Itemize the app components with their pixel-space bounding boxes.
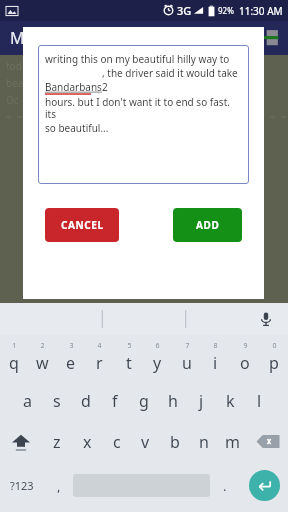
staticText: 11:30 AM — [239, 4, 283, 18]
button[interactable]: f — [100, 380, 129, 421]
staticText: M — [10, 27, 25, 49]
staticText: n — [199, 431, 209, 453]
button[interactable]: CANCEL — [45, 208, 119, 242]
staticText: 4 — [97, 341, 102, 351]
staticText: hours. but I don't want it to end so fas… — [45, 95, 243, 121]
button[interactable]: Voice input — [256, 309, 276, 329]
staticText: t — [126, 352, 132, 374]
staticText: b — [170, 431, 180, 453]
staticText: g — [139, 390, 149, 412]
staticText: s — [53, 390, 61, 412]
button[interactable]: Enter — [240, 462, 288, 509]
staticText: v — [141, 431, 150, 453]
staticText: 5 — [127, 341, 132, 351]
button[interactable]: v — [131, 421, 160, 462]
staticText: 3 — [69, 341, 74, 351]
button[interactable]: n — [189, 421, 218, 462]
staticText: i — [213, 352, 218, 374]
button[interactable]: x — [72, 421, 102, 462]
staticText: Oc — [6, 93, 19, 107]
staticText: writing this on my beautiful hilly way t… — [45, 52, 230, 66]
button[interactable]: Shift — [0, 421, 42, 462]
button[interactable]: 1 — [0, 335, 28, 380]
staticText: c — [113, 431, 121, 453]
button[interactable]: . — [210, 462, 240, 509]
staticText: . — [223, 477, 227, 495]
staticText: 9 — [243, 341, 248, 351]
staticText: o — [240, 352, 250, 374]
button[interactable]: m — [218, 421, 247, 462]
staticText: k — [226, 390, 235, 412]
staticText: , — [57, 477, 61, 495]
button[interactable]: d — [71, 380, 100, 421]
button[interactable]: s — [42, 380, 71, 421]
staticText: p — [269, 352, 279, 374]
staticText: w — [36, 352, 49, 374]
staticText: 3G — [177, 3, 192, 18]
staticText: j — [199, 390, 204, 412]
staticText: 1 — [12, 341, 17, 351]
staticText: x — [83, 431, 92, 453]
staticText: m — [225, 431, 240, 453]
staticText: a — [23, 390, 32, 412]
button[interactable]: 3 — [56, 335, 85, 380]
button[interactable]: writing this on my beautiful hilly way t… — [38, 45, 249, 184]
staticText: d — [81, 390, 91, 412]
staticText: e — [66, 352, 76, 374]
staticText: bea — [6, 76, 24, 90]
button[interactable]: ADD — [173, 208, 242, 242]
staticText: CANCEL — [61, 218, 104, 232]
button[interactable]: g — [129, 380, 158, 421]
button[interactable]: l — [245, 380, 274, 421]
button[interactable]: 8 — [201, 335, 230, 380]
staticText: ?123 — [10, 478, 34, 493]
staticText: l — [257, 390, 262, 412]
button[interactable]: ?123 — [0, 462, 44, 509]
staticText: 2 — [40, 341, 45, 351]
button[interactable]: k — [216, 380, 245, 421]
button[interactable]: a — [13, 380, 42, 421]
button[interactable]: z — [42, 421, 72, 462]
button[interactable]: Backspace — [247, 421, 288, 462]
staticText: 92% — [218, 5, 234, 16]
staticText: f — [112, 390, 118, 412]
button[interactable]: 6 — [143, 335, 172, 380]
button[interactable]: 4 — [85, 335, 114, 380]
staticText: h — [168, 390, 178, 412]
staticText: ADD — [196, 218, 220, 232]
staticText: z — [53, 431, 61, 453]
staticText: 6 — [155, 341, 160, 351]
button[interactable]: h — [158, 380, 187, 421]
staticText: tod — [6, 59, 22, 73]
button[interactable]: 2 — [28, 335, 56, 380]
staticText: , the driver said it would take 2 — [102, 66, 243, 94]
button[interactable]: b — [160, 421, 189, 462]
staticText: 0 — [272, 341, 277, 351]
button[interactable]: Add — [264, 29, 282, 47]
staticText: r — [96, 352, 103, 374]
button[interactable]: 0 — [259, 335, 288, 380]
button[interactable]: 9 — [230, 335, 259, 380]
staticText: u — [182, 352, 192, 374]
staticText: so beautiful... — [45, 121, 109, 135]
button[interactable]: , — [44, 462, 73, 509]
staticText: q — [9, 352, 19, 374]
button[interactable]: c — [102, 421, 131, 462]
staticText: 8 — [213, 341, 218, 351]
button[interactable]: j — [187, 380, 216, 421]
staticText: 7 — [185, 341, 190, 351]
staticText: Bandarbans — [45, 80, 102, 94]
button[interactable]: 5 — [114, 335, 143, 380]
button[interactable]: 7 — [172, 335, 201, 380]
staticText: y — [153, 352, 162, 374]
